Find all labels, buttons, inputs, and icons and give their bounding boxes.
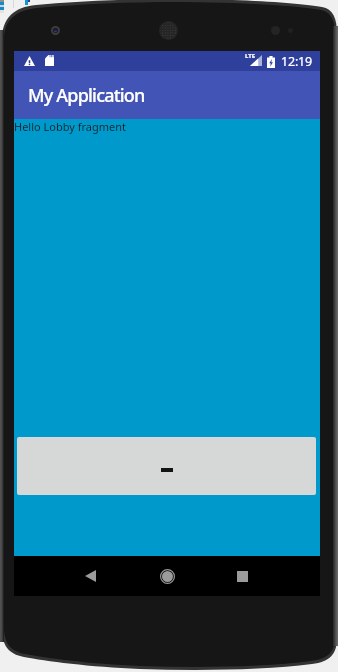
- button[interactable]: Recent apps: [218, 556, 266, 596]
- button[interactable]: Back: [66, 556, 114, 596]
- staticText: 12:19: [281, 53, 312, 70]
- button[interactable]: Home: [143, 556, 191, 596]
- staticText: My Application: [28, 83, 145, 108]
- staticText: Hello Lobby fragment: [14, 119, 127, 134]
- staticText: LTE: [245, 52, 256, 60]
- button[interactable]: [17, 437, 316, 495]
